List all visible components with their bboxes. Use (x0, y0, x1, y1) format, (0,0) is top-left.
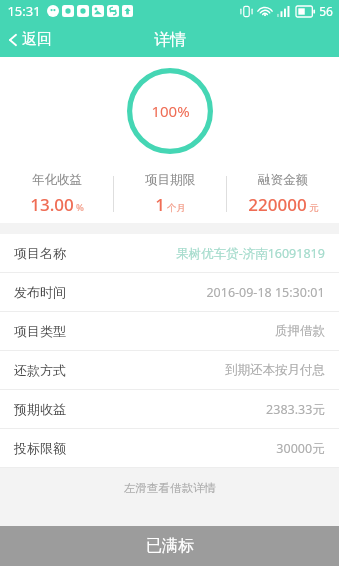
staticText: 发布时间 (14, 284, 66, 300)
staticText: 13.00 (30, 193, 74, 216)
staticText: 还款方式 (14, 362, 66, 378)
staticText: 项目类型 (14, 323, 66, 339)
button[interactable]: 项目类型 (0, 312, 339, 350)
staticText: 1 (155, 193, 165, 216)
staticText: 元 (309, 202, 319, 214)
staticText: 质押借款 (275, 323, 325, 339)
staticText: 年化收益 (32, 172, 82, 188)
staticText: 果树优车贷-济南16091819 (176, 245, 325, 262)
button[interactable]: 投标限额 (0, 429, 339, 467)
button[interactable]: 预期收益 (0, 390, 339, 428)
staticText: 56 (319, 3, 333, 19)
button[interactable]: 返回 (0, 22, 64, 57)
button[interactable]: 项目名称 (0, 234, 339, 272)
staticText: 个月 (167, 202, 186, 214)
staticText: 融资金额 (258, 172, 308, 188)
staticText: 2383.33元 (266, 401, 325, 418)
staticText: 15:31 (7, 2, 41, 20)
staticText: 左滑查看借款详情 (124, 481, 216, 495)
button[interactable]: 发布时间 (0, 273, 339, 311)
staticText: 到期还本按月付息 (225, 362, 325, 378)
staticText: 详情 (154, 30, 186, 50)
staticText: 投标限额 (14, 440, 66, 456)
staticText: 已满标 (146, 536, 194, 556)
staticText: 2016-09-18 15:30:01 (206, 284, 325, 301)
staticText: 返回 (22, 30, 52, 49)
staticText: 30000元 (276, 440, 325, 457)
staticText: % (76, 201, 84, 214)
staticText: 项目期限 (145, 172, 195, 188)
staticText: 项目名称 (14, 245, 66, 261)
staticText: 预期收益 (14, 401, 66, 417)
button[interactable]: 已满标 (0, 526, 339, 566)
staticText: 220000 (248, 193, 307, 216)
staticText: 100% (151, 101, 190, 121)
button[interactable]: 还款方式 (0, 351, 339, 389)
